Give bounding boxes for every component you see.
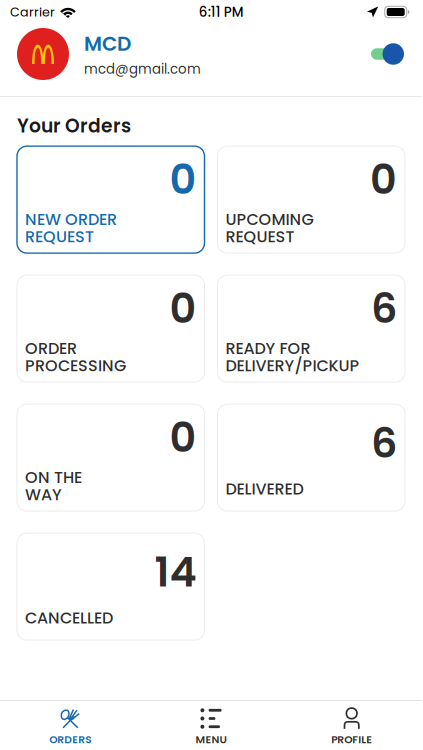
staticText: 6: [371, 414, 397, 472]
staticText: 6: [371, 279, 397, 337]
staticText: Carrier: [10, 3, 55, 21]
staticText: Your Orders: [17, 113, 131, 139]
staticText: 0: [169, 279, 196, 337]
staticText: 0: [169, 408, 196, 466]
button[interactable]: 0: [217, 146, 405, 253]
staticText: DELIVERY/PICKUP: [225, 355, 359, 377]
staticText: PROCESSING: [25, 355, 126, 377]
button[interactable]: 0: [17, 275, 204, 382]
staticText: MENU: [195, 732, 226, 747]
staticText: ON THE: [25, 466, 82, 489]
staticText: MCD: [84, 30, 131, 58]
staticText: UPCOMING: [225, 208, 313, 231]
staticText: ORDER: [25, 337, 77, 360]
button[interactable]: 6: [217, 404, 405, 511]
button[interactable]: 0: [17, 404, 204, 511]
staticText: NEW ORDER: [25, 208, 117, 231]
button[interactable]: 6: [217, 275, 405, 382]
staticText: 0: [169, 150, 196, 208]
button[interactable]: Store availability toggle: [371, 39, 404, 69]
staticText: mcd@gmail.com: [84, 60, 201, 78]
staticText: 14: [154, 543, 196, 601]
staticText: ORDERS: [49, 732, 91, 747]
button[interactable]: PROFILE: [281, 701, 422, 747]
button[interactable]: 14: [17, 533, 204, 640]
staticText: 0: [370, 150, 397, 208]
button[interactable]: 0: [17, 146, 204, 253]
staticText: WAY: [25, 484, 62, 506]
staticText: READY FOR: [225, 337, 310, 360]
staticText: PROFILE: [331, 732, 372, 747]
button[interactable]: ORDERS: [0, 701, 141, 747]
staticText: DELIVERED: [225, 478, 303, 500]
button[interactable]: MENU: [141, 701, 281, 747]
staticText: 6:11 PM: [199, 3, 244, 21]
staticText: REQUEST: [25, 226, 94, 248]
staticText: REQUEST: [225, 226, 294, 248]
staticText: CANCELLED: [25, 607, 113, 629]
